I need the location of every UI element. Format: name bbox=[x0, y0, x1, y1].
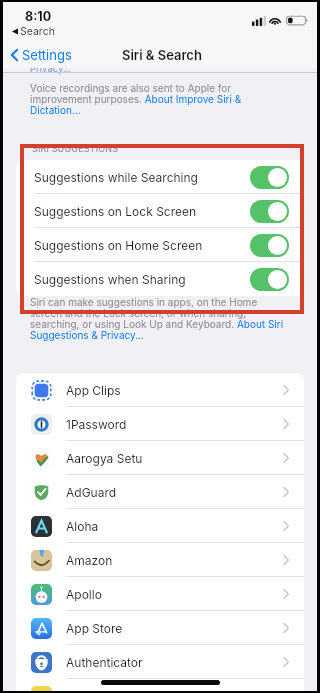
staticText: SIRI SUGGESTIONS bbox=[32, 143, 119, 154]
staticText: AdGuard bbox=[66, 485, 117, 500]
staticText: Siri & Search bbox=[122, 47, 202, 63]
button[interactable]: Amazon bbox=[16, 543, 304, 577]
staticText: Suggestions when Sharing bbox=[34, 272, 186, 287]
button[interactable]: App Clips bbox=[16, 373, 304, 407]
staticText: Suggestions on Lock Screen bbox=[34, 204, 197, 219]
staticText: Suggestions on Home Screen bbox=[34, 238, 203, 253]
button[interactable]: Suggestions on Home Screen bbox=[16, 228, 304, 262]
staticText: Amazon bbox=[66, 553, 113, 568]
staticText: App Clips bbox=[66, 383, 121, 398]
button[interactable]: Toggle, on bbox=[250, 268, 289, 291]
button[interactable]: Suggestions while Searching bbox=[16, 160, 304, 194]
button[interactable]: AdGuard bbox=[16, 475, 304, 509]
button[interactable]: 1Password bbox=[16, 407, 304, 441]
button[interactable]: Settings bbox=[3, 43, 80, 67]
button[interactable]: Authenticator bbox=[16, 645, 304, 679]
staticText: Suggestions while Searching bbox=[34, 170, 198, 185]
button[interactable]: Aloha bbox=[16, 509, 304, 543]
button[interactable]: Toggle, on bbox=[250, 234, 289, 257]
button[interactable]: Apollo bbox=[16, 577, 304, 611]
staticText: Apollo bbox=[66, 587, 102, 602]
staticText: Settings bbox=[22, 47, 72, 63]
staticText: Privacy... bbox=[30, 63, 72, 74]
staticText: Aarogya Setu bbox=[66, 451, 143, 466]
button[interactable]: App Store bbox=[16, 611, 304, 645]
staticText: Voice recordings are also sent to Apple … bbox=[30, 82, 286, 117]
button[interactable]: Suggestions when Sharing bbox=[16, 262, 304, 296]
staticText: 8:10 bbox=[25, 9, 52, 24]
button[interactable]: Toggle, on bbox=[250, 200, 289, 223]
button[interactable]: Suggestions on Lock Screen bbox=[16, 194, 304, 228]
staticText: Siri can make suggestions in apps, on th… bbox=[30, 296, 286, 342]
staticText: App Store bbox=[66, 621, 123, 636]
staticText: Aloha bbox=[66, 519, 99, 534]
staticText: Authenticator bbox=[66, 655, 143, 670]
staticText: Search bbox=[20, 25, 55, 38]
button[interactable]: Aarogya Setu bbox=[16, 441, 304, 475]
button[interactable]: Bitwarden bbox=[16, 679, 304, 691]
staticText: 1Password bbox=[66, 417, 127, 432]
button[interactable]: Toggle, on bbox=[250, 166, 289, 189]
